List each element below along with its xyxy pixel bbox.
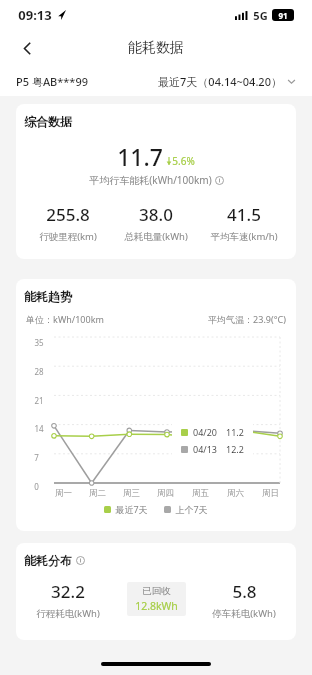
button[interactable]: Back xyxy=(10,31,44,65)
staticText: 04/13 xyxy=(193,443,217,455)
staticText: 周五 xyxy=(192,488,209,499)
staticText: 能耗趋势 xyxy=(24,289,72,304)
staticText: 7 xyxy=(34,452,39,463)
staticText: 平均车速(km/h) xyxy=(210,230,278,243)
staticText: 21 xyxy=(34,395,44,406)
staticText: 38.0 xyxy=(139,203,173,226)
staticText: 09:13 xyxy=(18,6,52,24)
staticText: 周四 xyxy=(157,488,174,499)
button[interactable]: 最近7天（04.14~04.20） xyxy=(158,74,296,89)
staticText: 行程耗电(kWh) xyxy=(36,607,100,620)
staticText: 5.8 xyxy=(232,580,257,603)
staticText: 91 xyxy=(278,10,288,21)
staticText: 能耗分布 xyxy=(24,553,72,568)
staticText: 32.2 xyxy=(51,580,85,603)
staticText: 11.7 xyxy=(117,141,163,172)
staticText: 周日 xyxy=(262,488,279,499)
staticText: 单位：kWh/100km xyxy=(26,313,104,325)
staticText: 14 xyxy=(34,423,44,434)
staticText: 综合数据 xyxy=(24,114,72,129)
staticText: 35 xyxy=(34,337,44,348)
staticText: 最近7天（04.14~04.20） xyxy=(158,74,282,89)
staticText: 行驶里程(km) xyxy=(39,230,97,243)
staticText: 41.5 xyxy=(227,203,261,226)
staticText: 5.6% xyxy=(172,154,195,168)
staticText: 停车耗电(kWh) xyxy=(212,607,276,620)
staticText: 能耗数据 xyxy=(128,39,184,57)
staticText: 已回收 xyxy=(142,585,171,597)
staticText: 12.2 xyxy=(226,443,244,455)
staticText: 周一 xyxy=(55,488,72,499)
staticText: 上个7天 xyxy=(175,503,208,515)
staticText: 总耗电量(kWh) xyxy=(124,230,188,243)
staticText: 0 xyxy=(34,481,39,492)
staticText: 5G xyxy=(253,8,268,23)
staticText: 周二 xyxy=(89,488,106,499)
staticText: 平均气温：23.9(°C) xyxy=(208,313,286,325)
staticText: 255.8 xyxy=(46,203,90,226)
staticText: P5 粤AB***99 xyxy=(16,74,88,89)
staticText: 周三 xyxy=(123,488,140,499)
staticText: 12.8kWh xyxy=(135,599,178,613)
button[interactable]: P5 粤AB***99 xyxy=(16,74,88,89)
staticText: 最近7天 xyxy=(115,503,148,515)
staticText: 周六 xyxy=(227,488,244,499)
staticText: 04/20 xyxy=(193,426,217,438)
staticText: 28 xyxy=(34,366,44,377)
staticText: 11.2 xyxy=(226,426,244,438)
staticText: 平均行车能耗(kWh/100km) xyxy=(89,173,212,187)
